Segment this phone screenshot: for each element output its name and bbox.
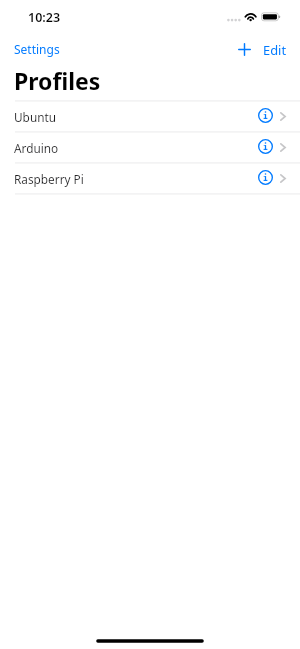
button[interactable]: More info about Raspberry Pi [258, 170, 273, 185]
button[interactable]: Add profile [232, 37, 257, 60]
button[interactable]: Ubuntu [0, 101, 300, 131]
staticText: Settings [14, 41, 60, 57]
staticText: Ubuntu [14, 109, 57, 125]
button[interactable]: Edit [257, 34, 300, 62]
staticText: 10:23 [28, 9, 61, 26]
button[interactable]: More info about Arduino [258, 139, 273, 154]
staticText: Arduino [14, 140, 59, 156]
button[interactable]: Arduino [0, 132, 300, 162]
staticText: Profiles [14, 65, 101, 96]
staticText: Edit [263, 41, 287, 59]
button[interactable]: More info about Ubuntu [258, 108, 273, 123]
button[interactable]: Settings [0, 34, 70, 61]
staticText: Raspberry Pi [14, 171, 84, 187]
button[interactable]: Raspberry Pi [0, 163, 300, 193]
